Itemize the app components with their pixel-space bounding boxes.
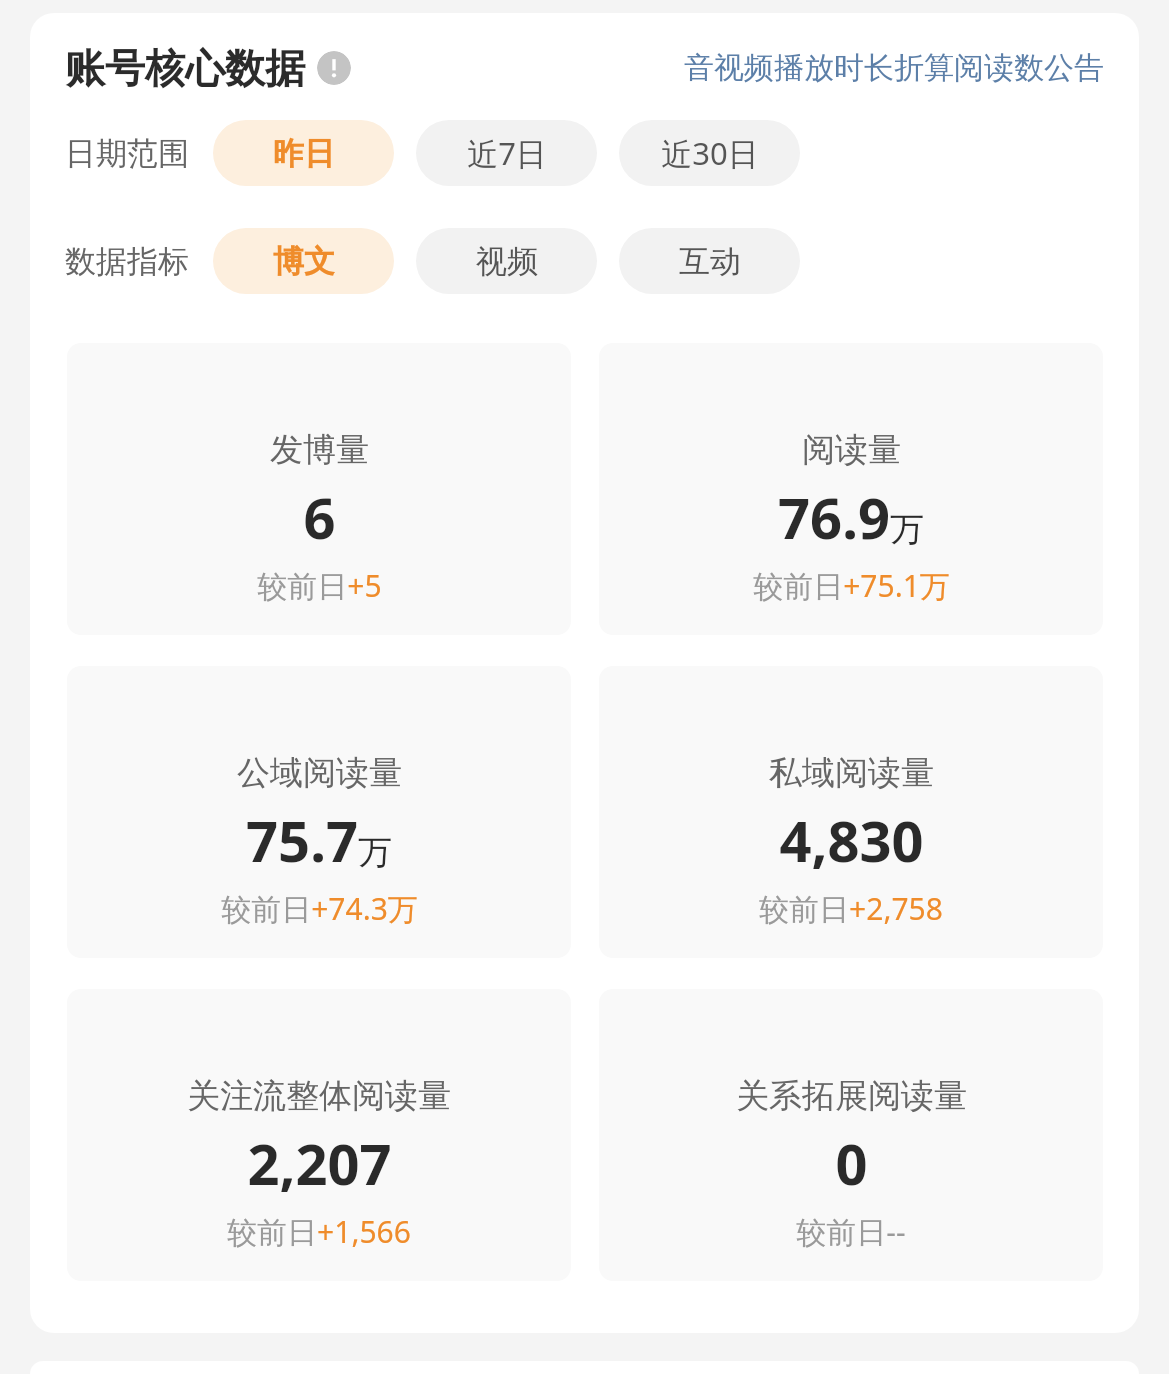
staticText: 较前日+2,758 — [759, 888, 943, 929]
button[interactable]: 公域阅读量 — [67, 666, 571, 958]
staticText: 数据指标 — [65, 242, 189, 281]
button[interactable]: 关系拓展阅读量 — [599, 989, 1103, 1281]
staticText: 昨日 — [273, 134, 335, 173]
staticText: 关系拓展阅读量 — [736, 1075, 967, 1117]
button[interactable]: 音视频播放时长折算阅读数公告 — [684, 49, 1104, 87]
staticText: 近7日 — [467, 132, 547, 174]
button[interactable]: 昨日 — [213, 120, 394, 186]
staticText: 万 — [358, 831, 392, 874]
button[interactable]: 近7日 — [416, 120, 597, 186]
button[interactable]: 私域阅读量 — [599, 666, 1103, 958]
staticText: 2,207 — [247, 1125, 392, 1201]
staticText: 账号核心数据 — [65, 43, 305, 93]
staticText: 互动 — [679, 242, 741, 281]
staticText: 公域阅读量 — [237, 752, 402, 794]
staticText: 4,830 — [779, 802, 924, 878]
button[interactable]: 视频 — [416, 228, 597, 294]
staticText: 私域阅读量 — [769, 752, 934, 794]
button[interactable]: 发博量 — [67, 343, 571, 635]
staticText: 较前日+75.1万 — [753, 565, 950, 606]
staticText: 近30日 — [661, 132, 759, 174]
staticText: 音视频播放时长折算阅读数公告 — [684, 49, 1104, 87]
button[interactable]: 关注流整体阅读量 — [67, 989, 571, 1281]
staticText: 较前日+74.3万 — [221, 888, 418, 929]
staticText: 阅读量 — [802, 429, 901, 471]
staticText: 万 — [890, 508, 924, 551]
staticText: 关注流整体阅读量 — [187, 1075, 451, 1117]
staticText: 6 — [303, 479, 336, 555]
staticText: 较前日-- — [796, 1211, 906, 1252]
staticText: 0 — [835, 1125, 868, 1201]
button[interactable]: 说明 — [317, 51, 351, 85]
staticText: 较前日+1,566 — [227, 1211, 411, 1252]
staticText: 75.7 — [246, 802, 358, 878]
button[interactable]: 近30日 — [619, 120, 800, 186]
staticText: 发博量 — [270, 429, 369, 471]
button[interactable]: 互动 — [619, 228, 800, 294]
staticText: 76.9 — [778, 479, 890, 555]
staticText: 日期范围 — [65, 134, 189, 173]
staticText: 博文 — [273, 242, 335, 281]
button[interactable]: 阅读量 — [599, 343, 1103, 635]
staticText: 视频 — [476, 242, 538, 281]
button[interactable]: 博文 — [213, 228, 394, 294]
staticText: 较前日+5 — [257, 565, 382, 606]
